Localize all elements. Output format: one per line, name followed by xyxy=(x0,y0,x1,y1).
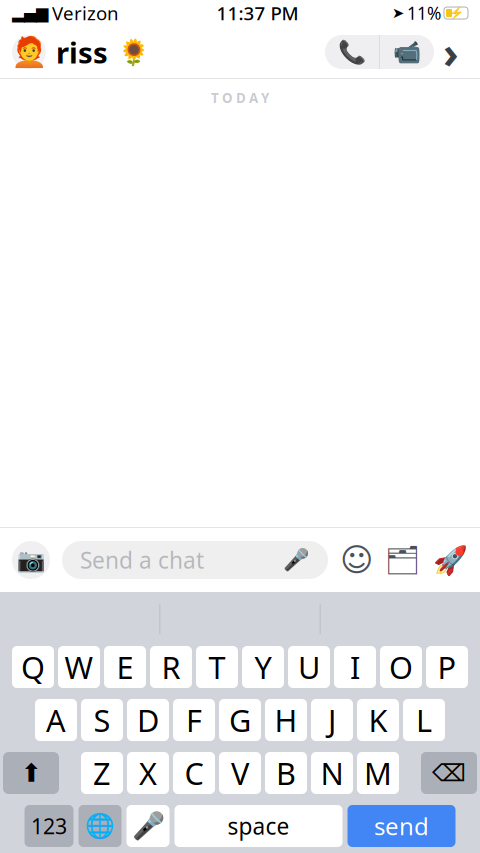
button[interactable]: P xyxy=(426,646,468,688)
button[interactable]: Video call xyxy=(380,35,434,69)
staticText: 11% xyxy=(407,1,441,24)
button[interactable]: S xyxy=(81,699,123,741)
button[interactable]: Dictate xyxy=(126,805,169,847)
button[interactable]: More xyxy=(434,32,468,72)
staticText: ⚡ xyxy=(448,6,463,20)
staticText: N xyxy=(320,753,343,793)
button[interactable]: 🧑‍🦰 xyxy=(12,32,150,71)
button[interactable]: Shift xyxy=(3,752,59,794)
staticText: T xyxy=(208,647,225,687)
button[interactable]: F xyxy=(173,699,215,741)
staticText: 📹 xyxy=(393,39,421,65)
button[interactable]: O xyxy=(380,646,422,688)
staticText: O xyxy=(389,647,413,687)
staticText: ▂▄▆ xyxy=(12,4,48,22)
staticText: 🚀 xyxy=(433,544,468,576)
button[interactable]: V xyxy=(219,752,261,794)
staticText: 🧑‍🦰 xyxy=(10,35,47,69)
button[interactable]: H xyxy=(265,699,307,741)
staticText: X xyxy=(139,753,157,793)
staticText: Send a chat xyxy=(80,545,204,575)
staticText: › xyxy=(443,24,459,80)
button[interactable]: Y xyxy=(242,646,284,688)
staticText: Z xyxy=(93,753,111,793)
button[interactable]: W xyxy=(58,646,100,688)
button[interactable]: T xyxy=(196,646,238,688)
staticText: K xyxy=(368,700,387,740)
staticText: 🌻 xyxy=(118,37,150,66)
button[interactable]: N xyxy=(311,752,353,794)
button[interactable]: space xyxy=(174,805,342,847)
staticText: 🎤 xyxy=(283,548,310,572)
staticText: L xyxy=(416,700,432,740)
button[interactable]: Voice call xyxy=(325,35,379,69)
staticText: 🌐 xyxy=(85,812,115,840)
staticText: E xyxy=(116,647,133,687)
button[interactable]: B xyxy=(265,752,307,794)
staticText: V xyxy=(231,753,249,793)
button[interactable]: Stickers xyxy=(340,542,373,578)
staticText: F xyxy=(186,700,202,740)
button[interactable]: L xyxy=(403,699,445,741)
staticText: W xyxy=(64,647,93,687)
staticText: D xyxy=(137,700,159,740)
button[interactable]: send xyxy=(347,805,455,847)
staticText: R xyxy=(161,647,180,687)
button[interactable]: Next keyboard xyxy=(78,805,121,847)
staticText: I xyxy=(350,647,360,687)
staticText: C xyxy=(184,753,203,793)
staticText: ☺ xyxy=(340,542,373,578)
button[interactable]: Numbers xyxy=(24,805,73,847)
staticText: 🎤 xyxy=(131,811,164,841)
button[interactable]: R xyxy=(150,646,192,688)
button[interactable]: J xyxy=(311,699,353,741)
staticText: J xyxy=(328,700,336,740)
button[interactable]: G xyxy=(219,699,261,741)
button[interactable]: K xyxy=(357,699,399,741)
button[interactable]: C xyxy=(173,752,215,794)
staticText: U xyxy=(298,647,320,687)
button[interactable]: A xyxy=(35,699,77,741)
staticText: Verizon xyxy=(52,1,119,25)
button[interactable]: Games xyxy=(433,544,468,576)
staticText: H xyxy=(274,700,297,740)
button[interactable]: Delete xyxy=(421,752,477,794)
staticText: Y xyxy=(254,647,271,687)
staticText: A xyxy=(46,700,66,740)
staticText: Q xyxy=(21,647,45,687)
button[interactable]: Q xyxy=(12,646,54,688)
staticText: 📞 xyxy=(338,39,366,65)
staticText: M xyxy=(364,753,392,793)
button[interactable]: E xyxy=(104,646,146,688)
staticText: 11:37 PM xyxy=(216,1,298,25)
staticText: send xyxy=(374,810,429,842)
button[interactable]: I xyxy=(334,646,376,688)
staticText: B xyxy=(276,753,296,793)
button[interactable]: Z xyxy=(81,752,123,794)
button[interactable]: D xyxy=(127,699,169,741)
staticText: 📷 xyxy=(17,547,45,573)
button[interactable]: U xyxy=(288,646,330,688)
staticText: ⬆ xyxy=(20,759,41,787)
staticText: 🗂 xyxy=(385,544,421,576)
button[interactable]: Camera xyxy=(12,541,50,579)
staticText: ⌫ xyxy=(432,759,466,787)
staticText: space xyxy=(227,811,289,841)
button[interactable]: Send a chat xyxy=(62,541,328,579)
staticText: riss xyxy=(56,32,108,71)
staticText: T O D A Y xyxy=(211,89,269,107)
staticText: ➤ xyxy=(392,5,404,21)
staticText: S xyxy=(93,700,110,740)
button[interactable]: Bitmoji xyxy=(385,544,421,576)
staticText: G xyxy=(229,700,251,740)
button[interactable]: X xyxy=(127,752,169,794)
staticText: P xyxy=(437,647,456,687)
staticText: 123 xyxy=(31,812,67,840)
button[interactable]: M xyxy=(357,752,399,794)
